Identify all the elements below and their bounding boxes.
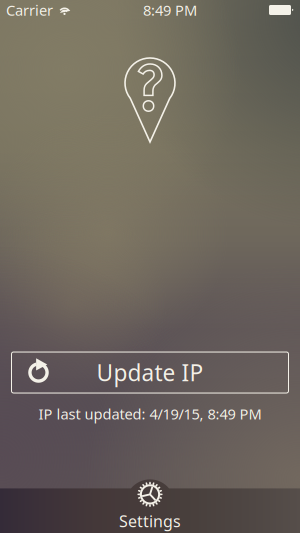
button[interactable]: Update IP [11, 352, 288, 393]
staticText: 8:49 PM [143, 0, 197, 20]
staticText: Update IP [96, 357, 203, 387]
staticText: Carrier [6, 0, 53, 20]
button[interactable]: Settings [0, 486, 300, 533]
staticText: IP last updated: 4/19/15, 8:49 PM [38, 404, 261, 423]
staticText: Settings [119, 510, 181, 532]
